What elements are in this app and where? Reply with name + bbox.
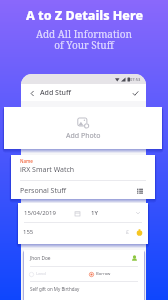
staticText: Borrow [96,271,111,277]
button[interactable]: Name [11,155,155,199]
button[interactable]: Jhon Doe [24,250,144,300]
staticText: Add Photo [66,131,101,141]
staticText: 07:53 [130,77,141,82]
staticText: 155 [23,228,34,236]
staticText: Add All Information of Your Stuff [36,27,132,52]
staticText: Personal Stuff [20,186,67,196]
staticText: 15/04/2019 [24,209,56,217]
button[interactable]: Borrow [89,271,111,277]
button[interactable]: Back [28,89,36,97]
staticText: Jhon Doe [30,255,51,262]
staticText: £ [126,229,129,236]
button[interactable]: Lend [29,271,46,277]
button[interactable]: Add Photo [4,107,162,149]
staticText: A to Z Details Here [26,7,143,24]
staticText: iRX Smart Watch [20,165,75,175]
staticText: Add Stuff [40,88,71,98]
button[interactable]: Save [131,89,139,97]
staticText: Lend [36,271,46,277]
button[interactable]: 15/04/2019 [18,203,148,244]
staticText: Name [20,158,33,164]
staticText: Self gift on My Birthday [30,286,80,292]
staticText: 1Y [91,209,98,217]
